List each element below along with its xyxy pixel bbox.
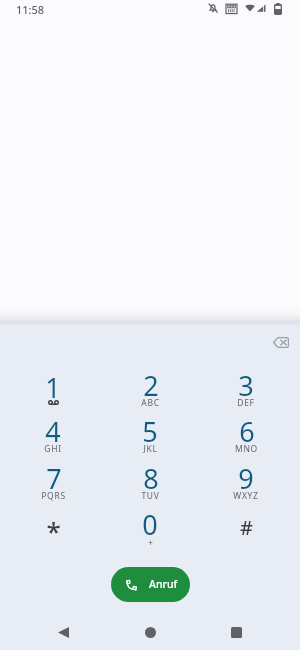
button[interactable]: 3 [214, 369, 278, 413]
staticText: + [148, 537, 153, 548]
staticText: PQRS [41, 490, 66, 502]
staticText: 7 [46, 460, 62, 497]
staticText: JKL [143, 443, 158, 455]
button[interactable]: # [214, 508, 278, 552]
button[interactable]: 1 [21, 369, 85, 413]
button[interactable]: 7 [21, 462, 85, 506]
button[interactable]: Backspace [262, 323, 300, 361]
staticText: 3 [238, 367, 254, 404]
staticText: 5 [142, 413, 158, 450]
staticText: Anruf [149, 577, 178, 591]
staticText: 2 [143, 367, 159, 404]
button[interactable]: 6 [214, 415, 278, 459]
button[interactable]: 5 [118, 415, 182, 459]
staticText: 1 [45, 369, 61, 406]
staticText: WXYZ [233, 490, 259, 502]
staticText: # [240, 514, 253, 541]
staticText: 9 [238, 460, 254, 497]
staticText: * [46, 513, 61, 548]
staticText: 8 [143, 460, 159, 497]
staticText: 0 [142, 506, 158, 543]
staticText: 11:58 [16, 2, 45, 17]
staticText: DEF [237, 397, 255, 409]
staticText: 6 [239, 413, 255, 450]
staticText: 4 [45, 413, 61, 450]
button[interactable]: 4 [21, 415, 85, 459]
button[interactable]: * [21, 508, 85, 552]
button[interactable]: 0 [118, 508, 182, 552]
staticText: ABC [141, 397, 160, 409]
staticText: GHI [44, 443, 62, 455]
button[interactable]: 9 [214, 462, 278, 506]
button[interactable]: Anruf [111, 567, 190, 602]
button[interactable]: Back [45, 614, 81, 650]
staticText: TUV [141, 490, 160, 502]
button[interactable]: Recent apps [218, 614, 254, 650]
button[interactable]: 2 [118, 369, 182, 413]
button[interactable]: Home [132, 614, 168, 650]
button[interactable]: 8 [118, 462, 182, 506]
staticText: MNO [235, 443, 258, 455]
